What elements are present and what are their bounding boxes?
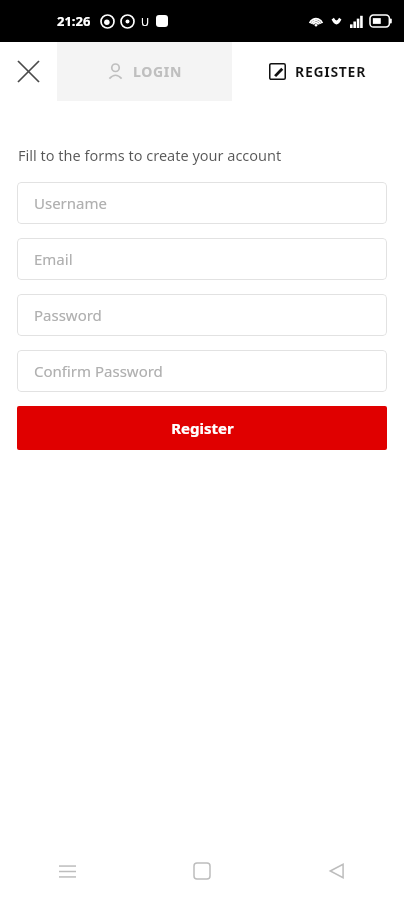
button[interactable]: Confirm Password [17,350,387,392]
button[interactable]: Register [17,406,387,450]
staticText: 21:26 [57,12,91,30]
staticText: U [141,14,150,29]
button[interactable]: REGISTER [232,42,404,101]
button[interactable]: Username [17,182,387,224]
staticText: Confirm Password [34,361,163,381]
button[interactable]: LOGIN [57,42,232,101]
staticText: REGISTER [295,62,367,81]
staticText: Fill to the forms to create your account [18,145,282,165]
button[interactable]: Password [17,294,387,336]
staticText: Register [171,418,234,438]
button[interactable]: Email [17,238,387,280]
button[interactable]: Recent apps [0,842,134,900]
staticText: Email [34,249,73,269]
staticText: LOGIN [133,62,183,81]
staticText: Username [34,193,107,213]
staticText: Password [34,305,102,325]
button[interactable]: Back [269,842,404,900]
button[interactable]: Close [0,42,57,101]
button[interactable]: Home [134,842,269,900]
